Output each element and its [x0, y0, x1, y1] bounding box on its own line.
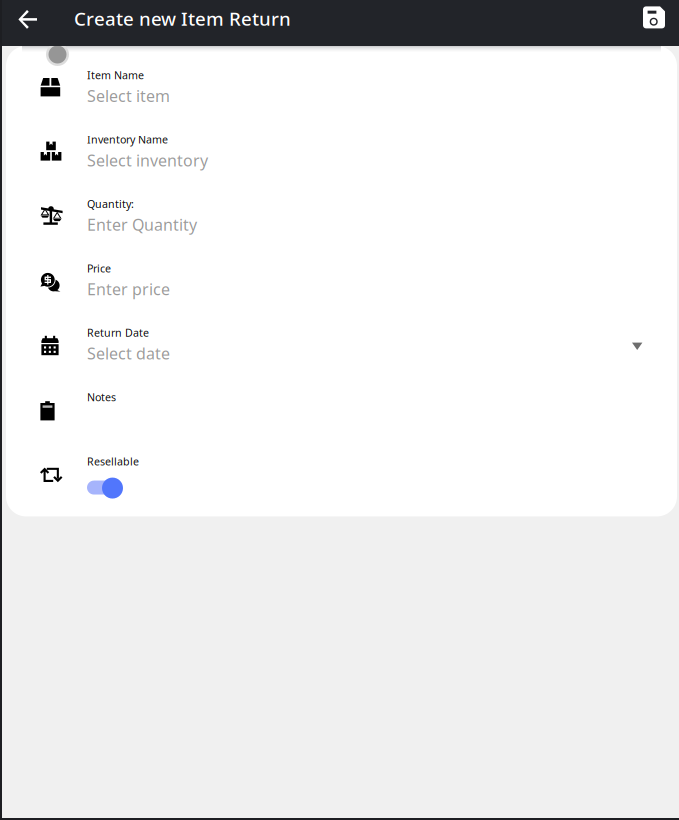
staticText: Select inventory — [87, 150, 208, 171]
staticText: Select date — [87, 343, 170, 364]
staticText: Enter Quantity — [87, 214, 197, 235]
staticText: Notes — [87, 390, 116, 404]
button[interactable]: Notes — [6, 390, 677, 454]
staticText: Resellable — [87, 454, 139, 469]
button[interactable]: Price — [6, 261, 677, 326]
button[interactable]: Resellable — [6, 454, 677, 516]
staticText: Price — [87, 261, 111, 275]
staticText: Create new Item Return — [74, 6, 291, 31]
button[interactable]: Item Name — [6, 68, 677, 132]
staticText: Quantity: — [87, 197, 134, 211]
staticText: Inventory Name — [87, 132, 168, 147]
button[interactable]: Inventory Name — [6, 132, 677, 197]
button[interactable]: Back — [0, 4, 55, 40]
staticText: Select item — [87, 85, 170, 106]
button[interactable]: Save — [632, 5, 676, 39]
button[interactable]: Create new Item Return — [55, 0, 299, 45]
staticText: Enter price — [87, 278, 170, 300]
staticText: Item Name — [87, 68, 144, 82]
button[interactable]: Return Date — [6, 326, 677, 390]
button[interactable]: Quantity: — [6, 197, 677, 261]
staticText: Return Date — [87, 326, 149, 340]
